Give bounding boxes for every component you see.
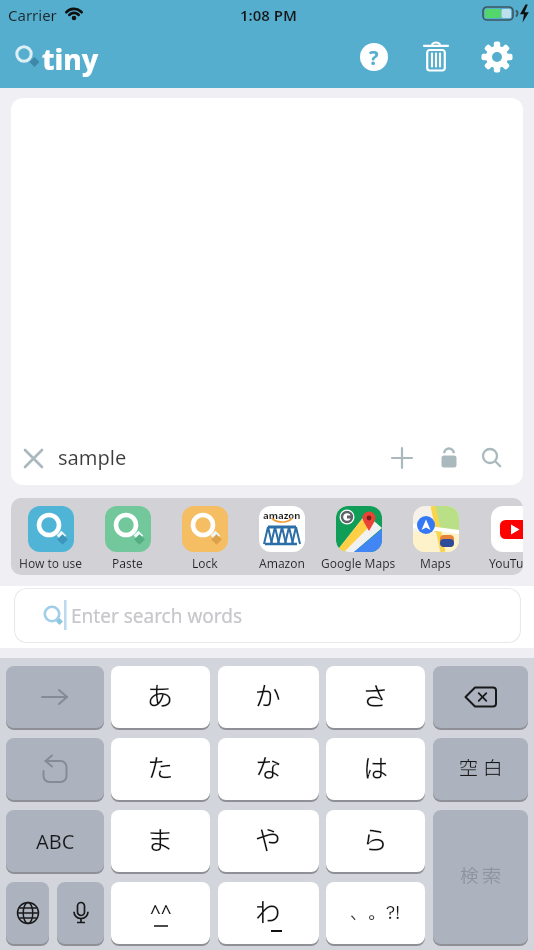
staticText: は: [362, 750, 389, 789]
button[interactable]: [433, 666, 528, 728]
staticText: 1:08 PM: [240, 5, 297, 25]
button[interactable]: か: [218, 666, 319, 728]
button[interactable]: [429, 438, 469, 478]
button[interactable]: 検索: [433, 810, 528, 944]
button[interactable]: How to use: [12, 498, 89, 575]
staticText: た: [147, 750, 174, 789]
staticText: Maps: [420, 555, 451, 571]
staticText: か: [255, 678, 282, 717]
staticText: Paste: [112, 555, 143, 571]
staticText: How to use: [19, 555, 83, 571]
button[interactable]: は: [326, 738, 425, 800]
staticText: amazon: [263, 509, 301, 522]
staticText: 検索: [460, 863, 505, 891]
button[interactable]: た: [111, 738, 210, 800]
staticText: 空白: [459, 755, 508, 783]
button[interactable]: [16, 441, 50, 475]
button[interactable]: [6, 666, 104, 728]
button[interactable]: Paste: [89, 498, 166, 575]
button[interactable]: Enter search words: [14, 588, 521, 643]
staticText: ^^: [150, 899, 172, 925]
staticText: ?: [369, 44, 379, 71]
staticText: わ: [255, 894, 282, 933]
button[interactable]: あ: [111, 666, 210, 728]
button[interactable]: Maps: [397, 498, 474, 575]
button[interactable]: [472, 438, 512, 478]
staticText: さ: [362, 678, 389, 717]
button[interactable]: Google Maps: [320, 498, 397, 575]
staticText: Google Maps: [321, 555, 396, 571]
staticText: な: [255, 750, 282, 789]
button[interactable]: Lock: [166, 498, 243, 575]
staticText: YouTube: [489, 555, 523, 571]
staticText: tiny: [42, 40, 99, 78]
button[interactable]: な: [218, 738, 319, 800]
staticText: Enter search words: [71, 603, 243, 629]
button[interactable]: ABC: [6, 810, 104, 872]
button[interactable]: [6, 738, 104, 800]
staticText: sample: [58, 444, 127, 471]
button[interactable]: [57, 882, 104, 944]
staticText: や: [255, 822, 282, 861]
button[interactable]: や: [218, 810, 319, 872]
button[interactable]: ?: [360, 43, 388, 71]
staticText: ら: [362, 822, 389, 861]
button[interactable]: ^^: [111, 882, 210, 944]
button[interactable]: [382, 438, 422, 478]
button[interactable]: amazon: [243, 498, 320, 575]
button[interactable]: 、。?!: [326, 882, 425, 944]
staticText: 、。?!: [350, 900, 401, 927]
staticText: Amazon: [259, 555, 305, 571]
button[interactable]: ま: [111, 810, 210, 872]
button[interactable]: 空白: [433, 738, 528, 800]
button[interactable]: ら: [326, 810, 425, 872]
staticText: ABC: [36, 828, 75, 855]
staticText: あ: [147, 678, 174, 717]
button[interactable]: わ: [218, 882, 319, 944]
staticText: Carrier: [8, 5, 57, 25]
button[interactable]: YouTube: [475, 498, 523, 575]
button[interactable]: [481, 41, 513, 73]
staticText: ま: [147, 822, 174, 861]
staticText: Lock: [192, 555, 218, 571]
button[interactable]: [6, 882, 49, 944]
button[interactable]: さ: [326, 666, 425, 728]
button[interactable]: [420, 41, 452, 73]
